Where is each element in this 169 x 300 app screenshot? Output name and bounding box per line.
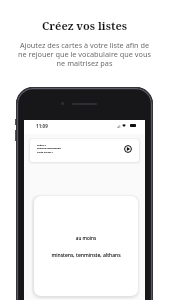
staticText: minstens, tenminste, althans [34, 252, 138, 259]
button[interactable]: au moins [34, 196, 138, 296]
staticText: Ajoutez des cartes à votre liste afin de… [17, 40, 152, 68]
staticText: au moins [34, 235, 138, 241]
staticText: Lettre A Français-Néerlandais Carte 20/2… [37, 143, 62, 154]
staticText: Créez vos listes [0, 18, 169, 33]
staticText: minstens, tenminste, althans [34, 252, 138, 259]
staticText: Lettre A Français-Néerlandais Carte 20/2… [37, 143, 62, 154]
staticText: au moins [34, 235, 138, 241]
button[interactable]: Play list [124, 145, 132, 153]
button[interactable]: Lettre A Français-Néerlandais Carte 20/2… [30, 139, 139, 162]
staticText: 11:09 [36, 123, 48, 129]
